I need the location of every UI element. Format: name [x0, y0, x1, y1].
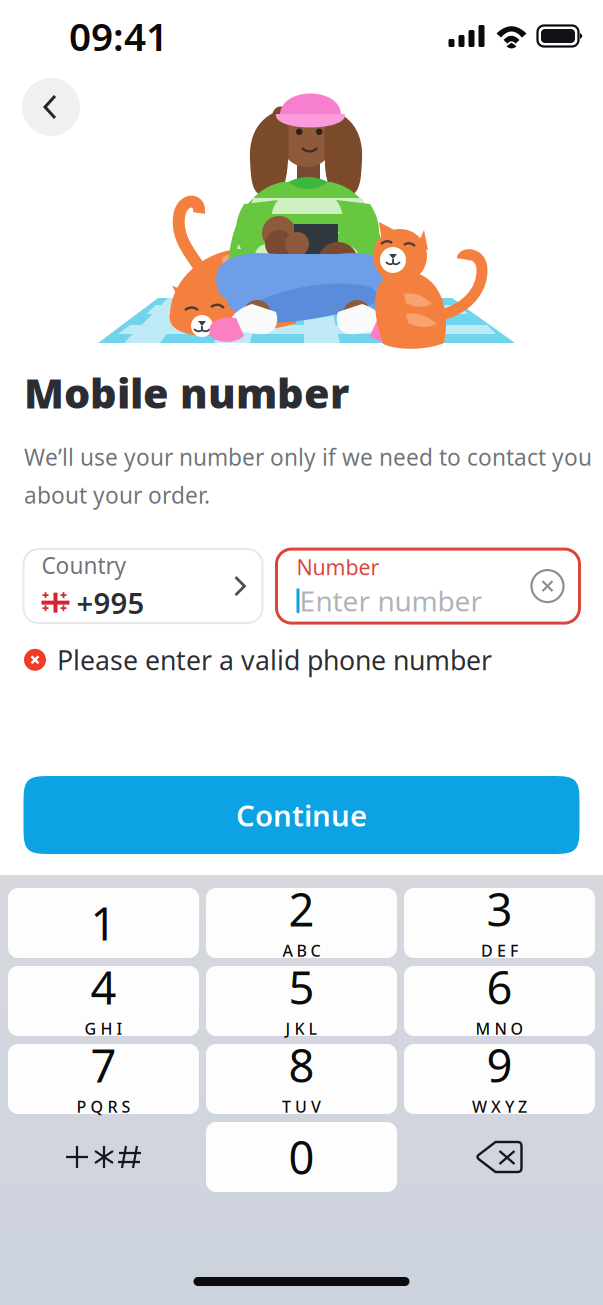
staticText: Please enter a valid phone number — [57, 642, 492, 677]
button[interactable]: Back — [22, 78, 80, 136]
staticText: P Q R S — [76, 1096, 130, 1117]
staticText: 6 — [486, 957, 512, 1017]
button[interactable]: Country — [23, 549, 262, 623]
button[interactable]: 5 — [206, 966, 397, 1036]
staticText: A B C — [282, 940, 320, 961]
button[interactable]: 6 — [404, 966, 595, 1036]
staticText: Mobile number — [24, 365, 349, 420]
staticText: Continue — [236, 795, 367, 834]
staticText: M N O — [475, 1018, 523, 1039]
staticText: J K L — [285, 1018, 317, 1039]
button[interactable]: 0 — [206, 1122, 397, 1192]
staticText: about your order. — [24, 480, 210, 510]
button[interactable]: 4 — [8, 966, 199, 1036]
staticText: D E F — [481, 940, 518, 961]
staticText: 0 — [288, 1127, 314, 1187]
staticText: Number — [296, 553, 379, 581]
staticText: 7 — [90, 1035, 116, 1095]
button[interactable]: 3 — [404, 888, 595, 958]
staticText: W X Y Z — [472, 1096, 527, 1117]
staticText: Country — [41, 550, 126, 580]
button[interactable]: 8 — [206, 1044, 397, 1114]
staticText: +995 — [76, 583, 144, 622]
button[interactable]: Number — [276, 549, 579, 623]
button[interactable]: 2 — [206, 888, 397, 958]
staticText: We’ll use your number only if we need to… — [24, 442, 592, 472]
staticText: Enter number — [299, 582, 482, 619]
button[interactable]: 9 — [404, 1044, 595, 1114]
staticText: 4 — [90, 957, 116, 1017]
staticText: 1 — [90, 893, 116, 953]
staticText: T U V — [282, 1096, 321, 1117]
staticText: 5 — [288, 957, 314, 1017]
staticText: G H I — [84, 1018, 122, 1039]
button[interactable]: 1 — [8, 888, 199, 958]
staticText: 8 — [288, 1035, 314, 1095]
staticText: 3 — [486, 879, 512, 939]
button[interactable]: Continue — [23, 776, 579, 854]
staticText: 9 — [486, 1035, 512, 1095]
button[interactable]: 7 — [8, 1044, 199, 1114]
staticText: 09:41 — [69, 10, 168, 62]
button[interactable]: Delete — [404, 1122, 595, 1192]
staticText: 2 — [288, 879, 314, 939]
button[interactable]: Symbols — [8, 1122, 199, 1192]
